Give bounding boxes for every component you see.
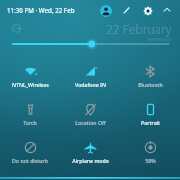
staticText: Bluetooth <box>138 81 163 88</box>
button[interactable]: Edit tiles <box>119 3 134 18</box>
staticText: 22 February <box>106 21 172 37</box>
button[interactable]: Location Off <box>60 100 120 126</box>
staticText: Portrait <box>141 119 160 126</box>
staticText: NTNL_Wireless <box>12 81 49 88</box>
staticText: Vodafone IN <box>75 81 106 88</box>
button[interactable]: Do not disturb <box>0 138 60 164</box>
button[interactable]: Torch <box>0 100 60 126</box>
button[interactable]: Vodafone IN <box>60 62 120 88</box>
button[interactable]: Airplane mode <box>60 138 120 164</box>
button[interactable]: NTNL_Wireless <box>0 62 60 88</box>
button[interactable]: Settings <box>140 3 155 18</box>
button[interactable]: Bluetooth <box>120 62 180 88</box>
button[interactable]: Brightness <box>0 36 180 52</box>
button[interactable]: User account <box>98 3 113 18</box>
staticText: Location Off <box>75 119 106 126</box>
button[interactable]: 58% <box>120 138 180 164</box>
button[interactable]: Portrait <box>120 100 180 126</box>
staticText: Airplane mode <box>72 157 109 164</box>
staticText: 11:30 PM · Wed, 22 Feb <box>7 6 75 14</box>
staticText: Torch <box>23 119 37 126</box>
button[interactable]: Collapse <box>160 3 174 17</box>
staticText: 58% <box>145 157 156 164</box>
staticText: WEDNESDAY <box>147 37 172 43</box>
staticText: Do not disturb <box>12 157 48 164</box>
